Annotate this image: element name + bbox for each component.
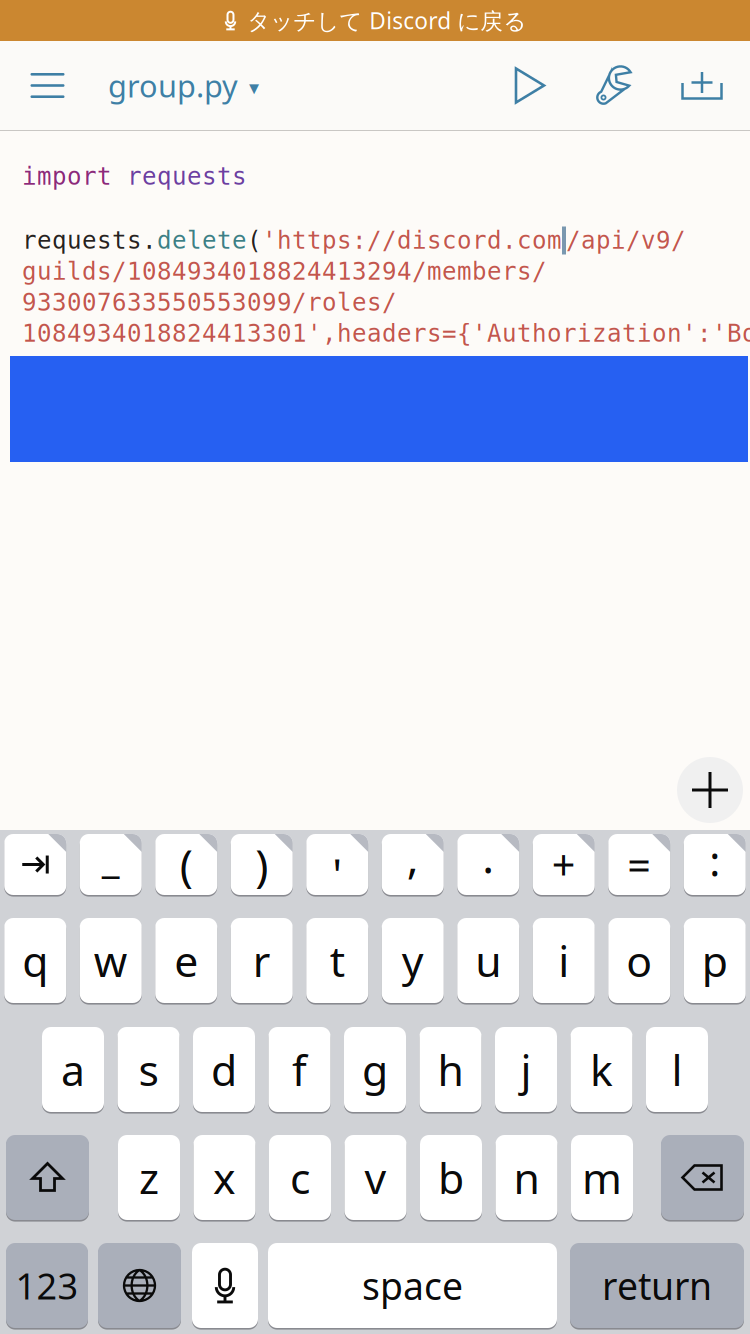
- staticText: s: [138, 1041, 158, 1098]
- button[interactable]: タッチして Discord に戻る: [0, 0, 750, 41]
- staticText: :: [709, 833, 720, 888]
- staticText: import: [22, 162, 127, 191]
- button[interactable]: n: [495, 1134, 557, 1221]
- button[interactable]: .: [457, 833, 519, 896]
- staticText: a: [61, 1041, 85, 1098]
- staticText: space: [362, 1261, 463, 1310]
- button[interactable]: c: [269, 1134, 331, 1221]
- staticText: delete: [157, 226, 247, 255]
- staticText: 'https://discord.com: [262, 226, 562, 255]
- staticText: (: [180, 835, 193, 894]
- button[interactable]: g: [344, 1026, 406, 1113]
- staticText: +: [552, 837, 576, 892]
- staticText: x: [213, 1149, 236, 1206]
- button[interactable]: 123: [6, 1242, 88, 1329]
- button[interactable]: Add: [677, 757, 743, 823]
- staticText: h: [437, 1041, 463, 1098]
- button[interactable]: s: [117, 1026, 179, 1113]
- staticText: g: [362, 1041, 388, 1098]
- button[interactable]: ,: [382, 833, 444, 896]
- button[interactable]: j: [495, 1026, 557, 1113]
- staticText: z: [139, 1149, 159, 1206]
- button[interactable]: [6, 1134, 89, 1221]
- button[interactable]: y: [382, 917, 444, 1004]
- button[interactable]: (: [155, 833, 217, 896]
- staticText: group.py: [108, 65, 238, 106]
- button[interactable]: return: [570, 1242, 744, 1329]
- button[interactable]: q: [4, 917, 66, 1004]
- button[interactable]: a: [42, 1026, 104, 1113]
- button[interactable]: ': [306, 833, 368, 896]
- button[interactable]: Tools: [572, 41, 654, 130]
- staticText: w: [94, 932, 128, 989]
- button[interactable]: i: [533, 917, 595, 1004]
- staticText: v: [364, 1149, 386, 1206]
- staticText: j: [520, 1041, 531, 1098]
- staticText: r: [253, 932, 271, 989]
- button[interactable]: r: [231, 917, 293, 1004]
- staticText: p: [702, 932, 728, 989]
- button[interactable]: New file: [654, 41, 750, 130]
- button[interactable]: [192, 1242, 258, 1329]
- staticText: q: [22, 932, 48, 989]
- button[interactable]: b: [420, 1134, 482, 1221]
- button[interactable]: v: [344, 1134, 406, 1221]
- button[interactable]: Run: [488, 41, 572, 130]
- button[interactable]: Menu: [0, 41, 95, 130]
- button[interactable]: _: [80, 833, 142, 896]
- button[interactable]: x: [193, 1134, 255, 1221]
- staticText: c: [290, 1149, 310, 1206]
- staticText: .: [482, 827, 494, 886]
- staticText: n: [513, 1149, 539, 1206]
- button[interactable]: k: [570, 1026, 632, 1113]
- button[interactable]: [661, 1134, 744, 1221]
- staticText: ▾: [249, 76, 259, 99]
- button[interactable]: +: [533, 833, 595, 896]
- staticText: ): [255, 835, 268, 894]
- button[interactable]: l: [646, 1026, 708, 1113]
- staticText: タッチして Discord に戻る: [247, 5, 526, 35]
- staticText: o: [626, 932, 652, 989]
- staticText: i: [558, 932, 569, 989]
- button[interactable]: d: [193, 1026, 255, 1113]
- staticText: (: [247, 226, 262, 255]
- staticText: 1084934018824413301',headers={'Authoriza…: [22, 319, 750, 348]
- staticText: 933007633550553099/roles/: [22, 288, 397, 317]
- staticText: k: [590, 1041, 613, 1098]
- button[interactable]: m: [571, 1134, 633, 1221]
- button[interactable]: space: [268, 1242, 557, 1329]
- staticText: b: [438, 1149, 464, 1206]
- button[interactable]: :: [684, 833, 746, 896]
- staticText: =: [627, 837, 651, 892]
- staticText: ,: [407, 827, 419, 886]
- button[interactable]: [4, 833, 66, 896]
- button[interactable]: =: [608, 833, 670, 896]
- staticText: guilds/1084934018824413294/members/: [22, 257, 547, 286]
- button[interactable]: h: [419, 1026, 481, 1113]
- staticText: _: [102, 831, 120, 884]
- button[interactable]: [98, 1242, 181, 1329]
- staticText: d: [211, 1041, 237, 1098]
- staticText: requests: [127, 162, 247, 191]
- staticText: return: [602, 1261, 712, 1310]
- button[interactable]: e: [155, 917, 217, 1004]
- staticText: t: [330, 932, 345, 989]
- staticText: f: [292, 1041, 307, 1098]
- button[interactable]: group.py: [108, 41, 259, 130]
- staticText: e: [174, 932, 198, 989]
- button[interactable]: z: [118, 1134, 180, 1221]
- staticText: /api/v9/: [566, 226, 686, 255]
- button[interactable]: ): [231, 833, 293, 896]
- button[interactable]: o: [608, 917, 670, 1004]
- staticText: ': [332, 844, 342, 903]
- staticText: requests.: [22, 226, 157, 255]
- button[interactable]: f: [268, 1026, 330, 1113]
- button[interactable]: p: [684, 917, 746, 1004]
- button[interactable]: u: [457, 917, 519, 1004]
- staticText: 123: [15, 1262, 78, 1309]
- staticText: l: [671, 1041, 682, 1098]
- button[interactable]: t: [306, 917, 368, 1004]
- button[interactable]: w: [80, 917, 142, 1004]
- staticText: y: [402, 932, 424, 989]
- staticText: u: [475, 932, 501, 989]
